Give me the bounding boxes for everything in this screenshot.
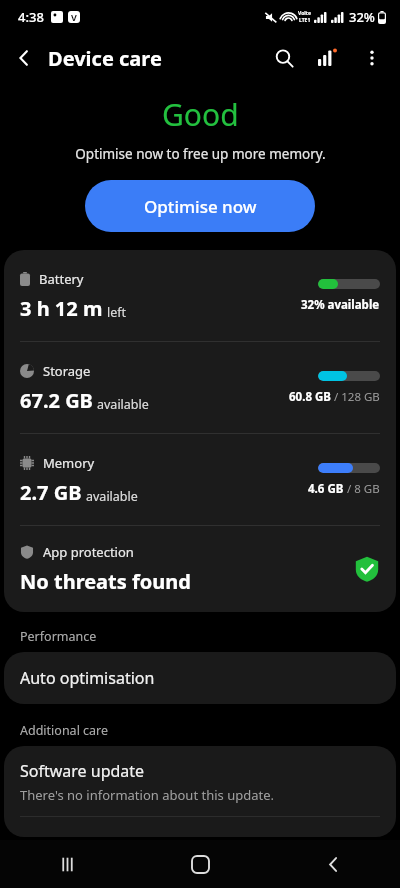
staticText: left xyxy=(107,304,127,321)
staticText: Additional care xyxy=(20,722,109,739)
button[interactable]: Optimise now xyxy=(85,180,315,232)
staticText: available xyxy=(86,488,138,505)
button[interactable]: Software update xyxy=(4,746,396,816)
button[interactable]: Back xyxy=(0,34,48,82)
staticText: available xyxy=(97,396,149,413)
staticText: Auto optimisation xyxy=(20,667,155,689)
button[interactable]: Search xyxy=(262,36,306,80)
staticText: / 128 GB xyxy=(331,389,380,405)
staticText: Performance xyxy=(20,628,97,645)
staticText: Device care xyxy=(48,45,162,72)
staticText: 32% xyxy=(349,8,375,26)
staticText: Software update xyxy=(20,760,145,782)
staticText: Memory xyxy=(43,454,95,472)
button[interactable]: Recent apps xyxy=(0,840,134,888)
staticText: / 8 GB xyxy=(344,481,380,497)
staticText: LTE1 xyxy=(299,17,311,24)
staticText: 67.2 GB xyxy=(20,387,93,414)
staticText: App protection xyxy=(43,543,134,561)
button[interactable]: Memory xyxy=(4,434,396,525)
staticText: 4:38 xyxy=(18,8,44,26)
staticText: V xyxy=(71,11,77,23)
staticText: Optimise now to free up more memory. xyxy=(75,145,326,163)
staticText: Good xyxy=(162,94,239,135)
button[interactable]: More options xyxy=(350,36,394,80)
button[interactable]: Battery xyxy=(4,250,396,341)
staticText: 3 h 12 m xyxy=(20,295,103,322)
staticText: No threats found xyxy=(20,568,191,595)
staticText: Storage xyxy=(43,362,91,380)
staticText: Volte xyxy=(298,10,311,17)
button[interactable]: App protection xyxy=(4,526,396,612)
button[interactable]: Storage xyxy=(4,342,396,433)
staticText: Optimise now xyxy=(144,195,257,218)
button[interactable]: Home xyxy=(134,840,267,888)
staticText: 60.8 GB xyxy=(289,389,331,405)
button[interactable]: Diagnostics xyxy=(306,36,350,80)
button[interactable]: Back xyxy=(267,840,400,888)
button[interactable]: Auto optimisation xyxy=(4,652,396,704)
staticText: There's no information about this update… xyxy=(20,786,274,804)
staticText: 4.6 GB xyxy=(308,481,344,497)
staticText: 2.7 GB xyxy=(20,479,82,506)
staticText: Battery xyxy=(39,270,84,288)
staticText: 32% available xyxy=(301,297,380,313)
